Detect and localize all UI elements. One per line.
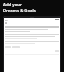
button[interactable]: Back [5,22,7,24]
staticText: 9:41 [5,19,9,21]
button[interactable]: 9:41 [3,16,61,72]
staticText: Add your [3,2,22,8]
staticText: Dreams & Goals [3,8,36,14]
